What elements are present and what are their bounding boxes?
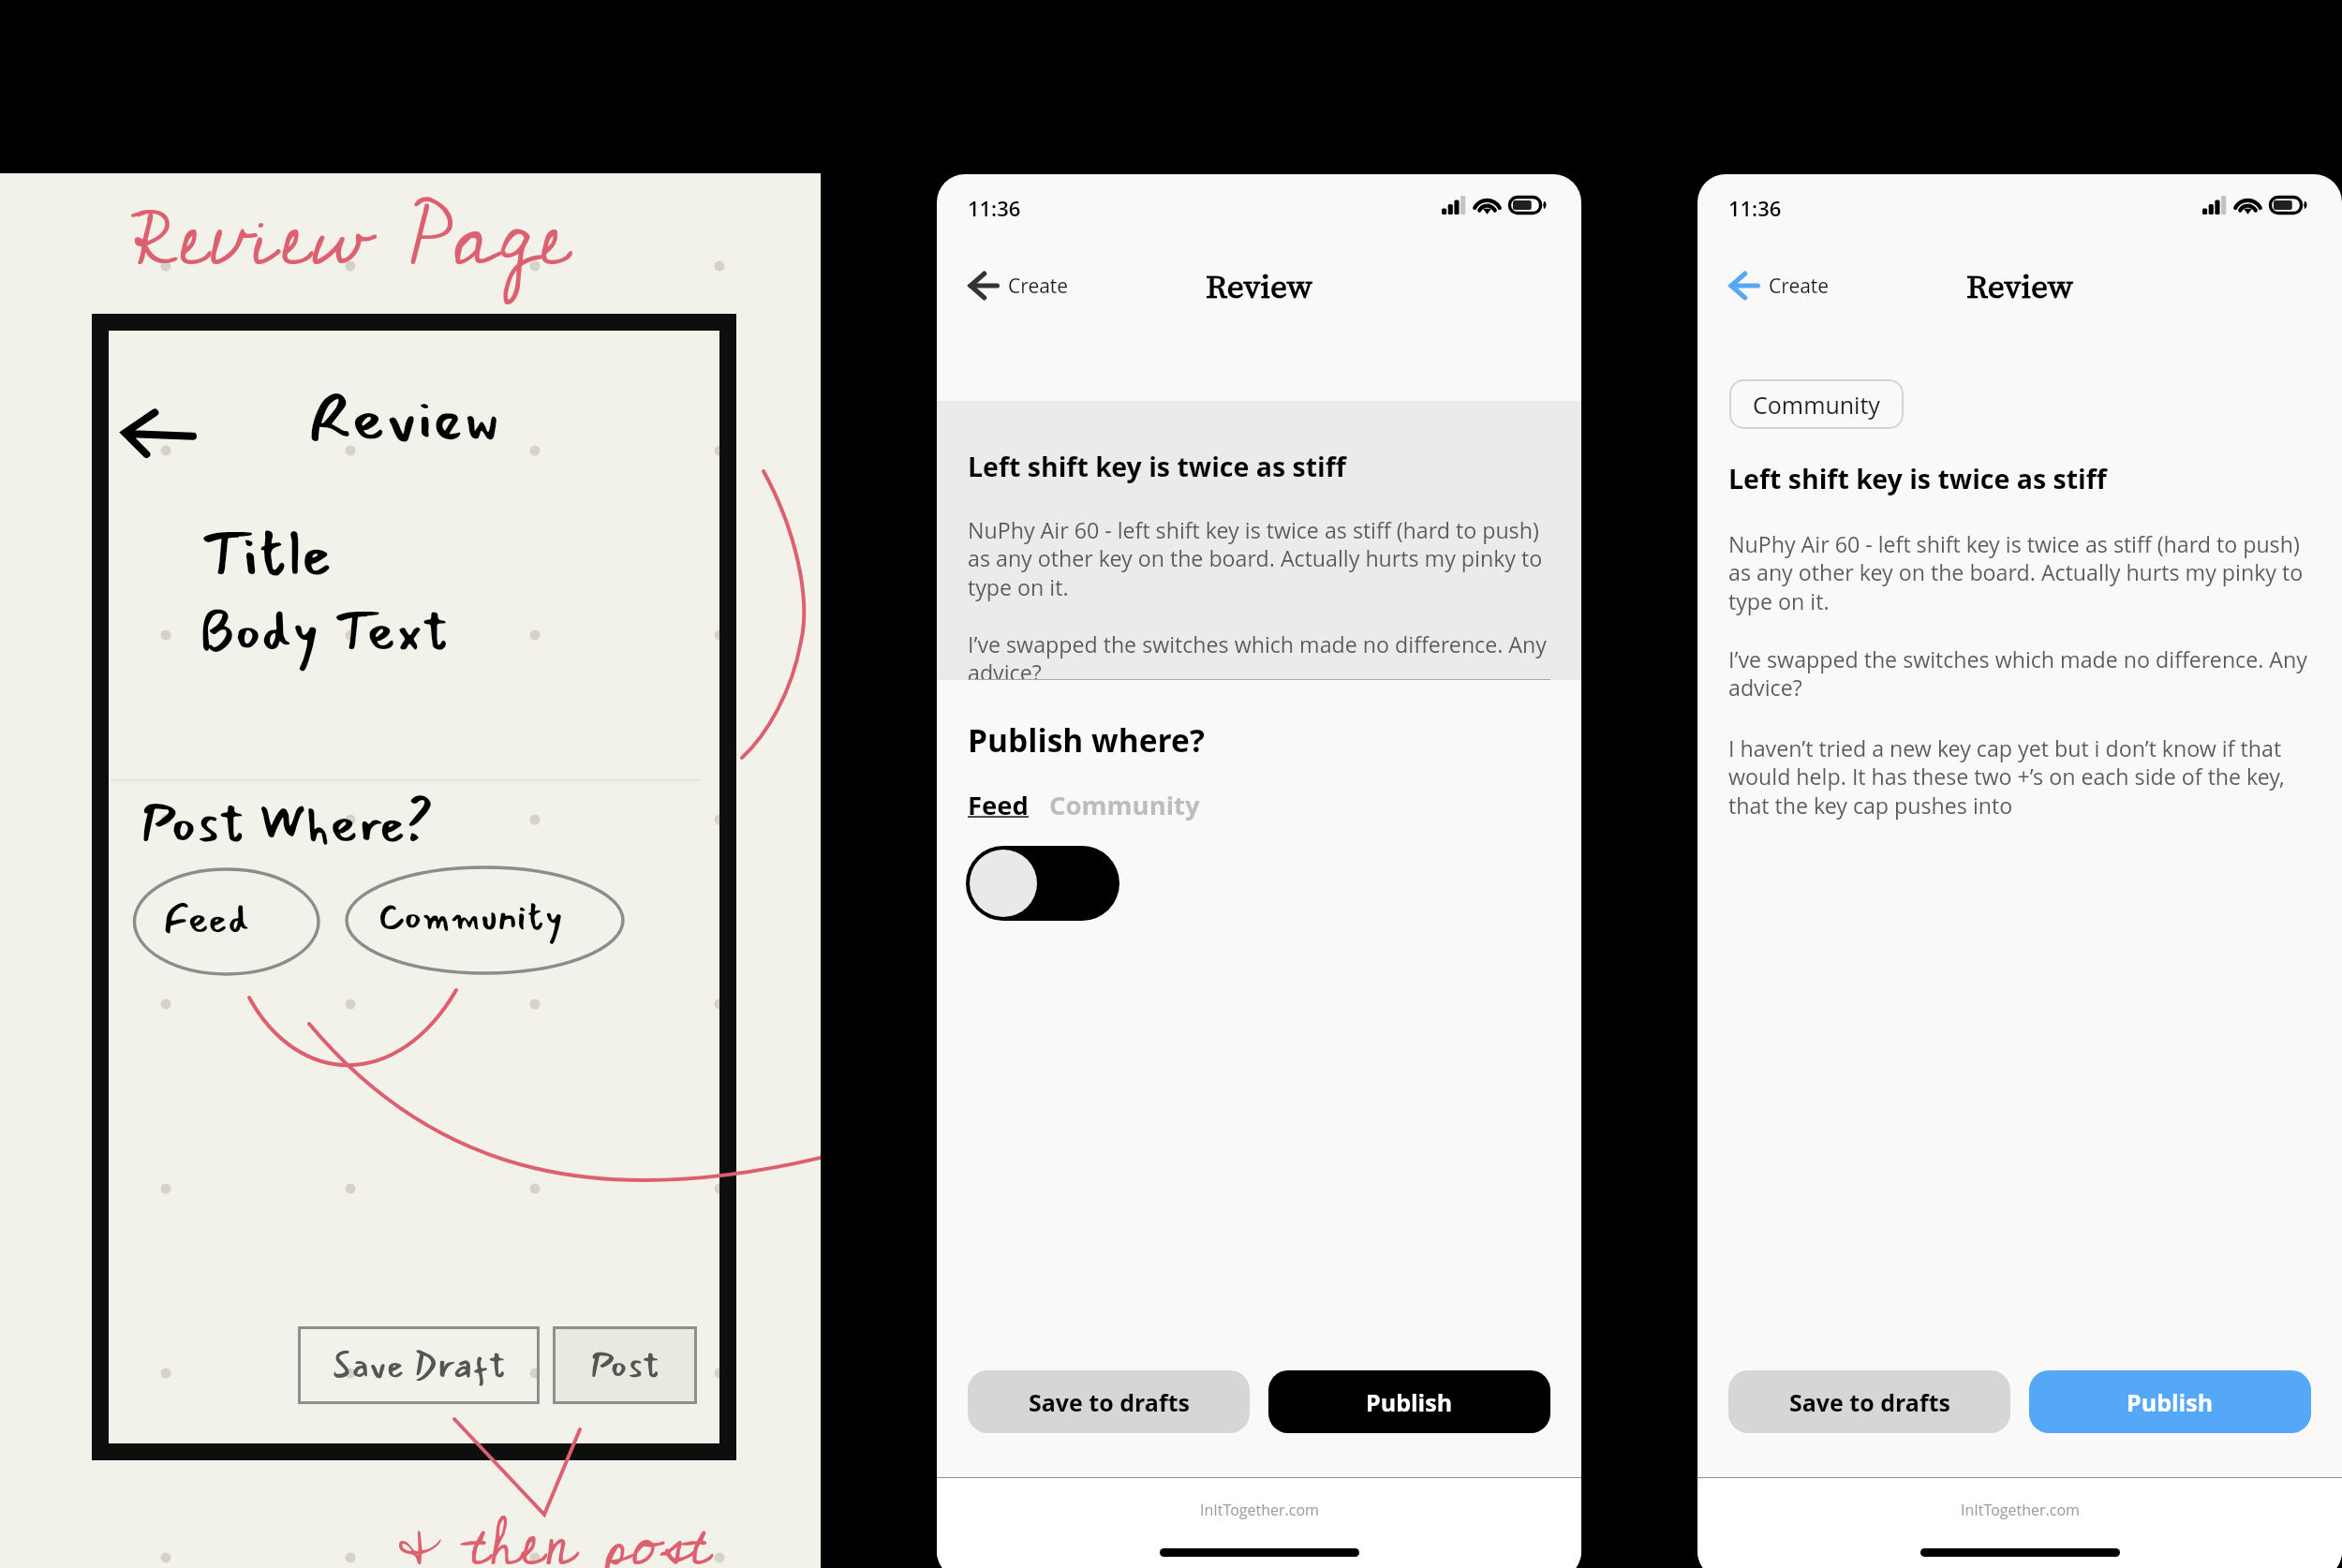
staticText: Body Text <box>200 587 449 674</box>
staticText: Feed <box>163 888 250 950</box>
staticText: Save to drafts <box>1789 1386 1950 1418</box>
staticText: Save to drafts <box>1029 1386 1190 1418</box>
button[interactable]: Left shift key is twice as stiff <box>937 401 1581 680</box>
staticText: Left shift key is twice as stiff <box>1728 461 2107 497</box>
staticText: InItTogether.com <box>1200 1500 1319 1520</box>
staticText: Left shift key is twice as stiff <box>968 449 1346 485</box>
staticText: InItTogether.com <box>1961 1500 2080 1520</box>
staticText: Save Draft <box>333 1338 506 1394</box>
staticText: Publish <box>1366 1386 1453 1418</box>
button[interactable]: Publish <box>1268 1370 1550 1433</box>
staticText: Review Page <box>129 173 571 318</box>
staticText: Post <box>590 1338 660 1394</box>
button[interactable]: Back to Create <box>968 271 1069 301</box>
button[interactable]: Community <box>1049 784 1200 826</box>
button[interactable]: Community <box>1729 379 1904 429</box>
button[interactable]: Publish target toggle <box>966 846 1119 921</box>
staticText: NuPhy Air 60 - left shift key is twice a… <box>1728 529 2317 616</box>
staticText: Create <box>1008 273 1069 300</box>
button[interactable]: Feed <box>968 784 1029 826</box>
staticText: Post Where? <box>141 782 434 866</box>
staticText: Community <box>1049 788 1200 822</box>
staticText: Community <box>378 888 563 947</box>
staticText: & then post <box>398 1483 711 1568</box>
staticText: I’ve swapped the switches which made no … <box>968 629 1556 680</box>
staticText: NuPhy Air 60 - left shift key is twice a… <box>968 515 1556 602</box>
staticText: Feed <box>968 788 1029 822</box>
staticText: Publish where? <box>968 718 1205 762</box>
button[interactable]: Publish <box>2029 1370 2311 1433</box>
staticText: Community <box>1753 389 1880 421</box>
staticText: Review <box>307 368 500 468</box>
button[interactable]: Back to Create <box>1728 271 1830 301</box>
staticText: 11:36 <box>968 194 1021 222</box>
staticText: 11:36 <box>1728 194 1782 222</box>
staticText: Review <box>1966 263 2073 309</box>
staticText: Title <box>200 504 333 603</box>
staticText: Create <box>1769 273 1830 300</box>
button[interactable]: Save to drafts <box>1728 1370 2010 1433</box>
button[interactable]: Save to drafts <box>968 1370 1250 1433</box>
staticText: I haven’t tried a new key cap yet but i … <box>1728 733 2317 821</box>
staticText: I’ve swapped the switches which made no … <box>1728 644 2317 703</box>
staticText: Publish <box>2127 1386 2214 1418</box>
staticText: Review <box>1206 263 1312 309</box>
